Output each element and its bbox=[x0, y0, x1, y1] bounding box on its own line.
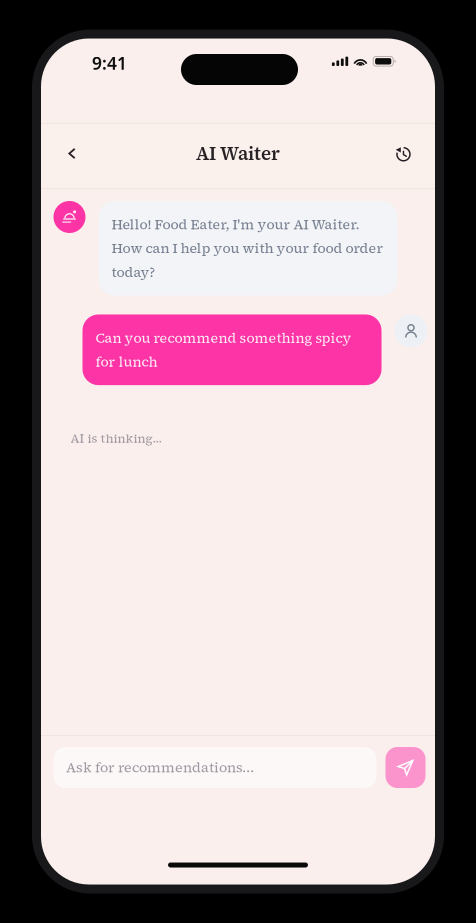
staticText: Ask for recommendations... bbox=[66, 758, 254, 777]
button[interactable]: Conversation history bbox=[384, 131, 422, 175]
button[interactable]: Send bbox=[385, 747, 425, 788]
staticText: 9:41 bbox=[92, 51, 127, 74]
button[interactable]: Back bbox=[53, 131, 91, 175]
staticText: AI Waiter bbox=[196, 141, 280, 166]
button[interactable]: Ask for recommendations... bbox=[53, 747, 376, 788]
staticText: AI is thinking... bbox=[70, 430, 162, 447]
staticText: Can you recommend something spicy for lu… bbox=[95, 328, 351, 371]
staticText: Hello! Food Eater, I'm your AI Waiter. H… bbox=[111, 215, 383, 281]
